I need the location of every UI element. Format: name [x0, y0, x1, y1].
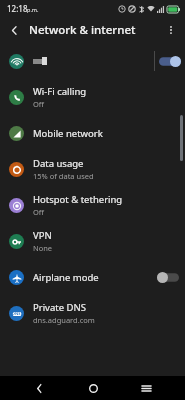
- button[interactable]: Airplane mode: [0, 259, 185, 295]
- button[interactable]: Recent apps: [132, 376, 160, 400]
- button[interactable]: Back: [3, 19, 25, 41]
- staticText: Hotspot & tethering: [33, 193, 123, 206]
- button[interactable]: More options: [160, 19, 182, 41]
- staticText: Network & internet: [29, 22, 136, 38]
- staticText: Off: [33, 207, 45, 217]
- button[interactable]: Home: [79, 376, 107, 400]
- staticText: dns.adguard.com: [33, 315, 95, 325]
- staticText: Private DNS: [33, 301, 86, 314]
- staticText: Wi-Fi calling: [33, 85, 87, 98]
- staticText: Data usage: [33, 157, 84, 170]
- button[interactable]: Data usage: [0, 151, 185, 187]
- staticText: p.m.: [27, 6, 39, 13]
- button[interactable]: Wi-Fi calling: [0, 79, 185, 115]
- button[interactable]: Mobile network: [0, 115, 185, 151]
- staticText: 12:18: [7, 3, 28, 14]
- button[interactable]: Hotspot & tethering: [0, 187, 185, 223]
- staticText: Off: [33, 99, 45, 109]
- staticText: Airplane mode: [33, 271, 99, 284]
- staticText: Mobile network: [33, 127, 103, 140]
- staticText: 15% of data used: [33, 171, 94, 181]
- button[interactable]: Back: [25, 376, 53, 400]
- staticText: None: [33, 243, 53, 253]
- button[interactable]: Wi-Fi toggle: [0, 43, 185, 79]
- staticText: DNS: [12, 311, 21, 316]
- button[interactable]: Airplane mode toggle: [151, 259, 185, 295]
- button[interactable]: DNS: [0, 295, 185, 331]
- staticText: VPN: [33, 229, 52, 242]
- button[interactable]: VPN: [0, 223, 185, 259]
- button[interactable]: Wi-Fi toggle: [155, 43, 185, 79]
